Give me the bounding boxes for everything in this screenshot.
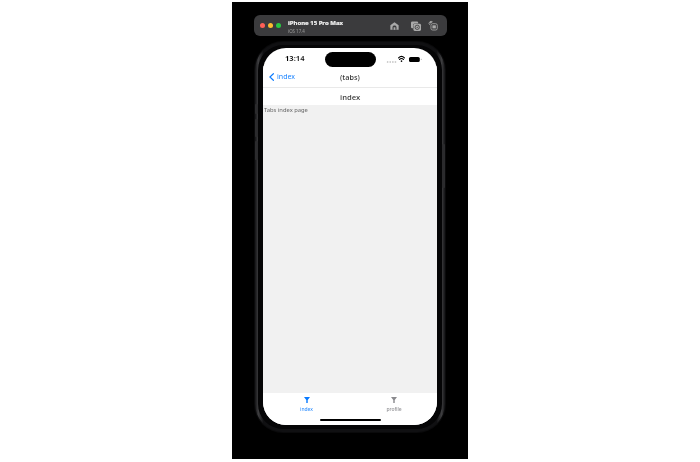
staticText: index xyxy=(300,406,313,413)
staticText: iPhone 15 Pro Max xyxy=(288,19,343,27)
button[interactable]: Close xyxy=(260,23,265,28)
button[interactable]: Rotate device xyxy=(426,18,441,33)
button[interactable]: index xyxy=(269,66,295,87)
staticText: 13:14 xyxy=(285,53,305,63)
staticText: index xyxy=(277,72,295,82)
staticText: Tabs index page xyxy=(264,106,308,114)
staticText: (tabs) xyxy=(340,72,360,82)
staticText: index xyxy=(340,92,361,102)
staticText: iOS 17.4 xyxy=(288,28,305,34)
button[interactable]: Home xyxy=(387,18,402,33)
button[interactable]: Minimize xyxy=(268,23,273,28)
staticText: profile xyxy=(386,406,402,413)
button[interactable]: profile xyxy=(350,397,437,425)
button[interactable]: Screenshot xyxy=(408,18,423,33)
button[interactable]: Maximize xyxy=(276,23,281,28)
button[interactable]: index xyxy=(263,397,350,425)
